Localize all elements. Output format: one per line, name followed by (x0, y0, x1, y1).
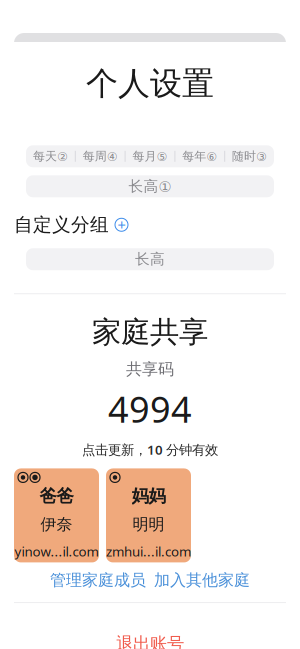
button[interactable]: 每天② (26, 145, 75, 167)
staticText: 家庭共享 (92, 314, 208, 350)
staticText: 加入其他家庭 (154, 570, 250, 590)
staticText: 随时③ (232, 149, 267, 164)
button[interactable]: 4994 (108, 385, 192, 433)
staticText: 共享码 (126, 359, 174, 379)
button[interactable]: 每年⑥ (175, 145, 224, 167)
staticText: 每天② (33, 149, 68, 164)
staticText: 妈妈 (131, 485, 165, 507)
staticText: 每周④ (83, 149, 118, 164)
button[interactable]: 管理家庭成员 (50, 570, 146, 590)
button[interactable]: 随时③ (225, 145, 274, 167)
button[interactable]: 每周④ (76, 145, 125, 167)
staticText: zmhui...il.com (106, 542, 191, 560)
staticText: 4994 (108, 385, 192, 433)
button[interactable]: 加入其他家庭 (154, 570, 250, 590)
staticText: 退出账号 (116, 633, 184, 649)
button[interactable]: 自定义分组 (14, 213, 286, 236)
staticText: 每年⑥ (182, 149, 217, 164)
button[interactable]: 长高 (26, 248, 274, 270)
button[interactable]: 爸爸 (14, 468, 99, 562)
staticText: 点击更新，10 分钟有效 (82, 441, 218, 458)
staticText: 爸爸 (39, 485, 73, 507)
staticText: 明明 (132, 515, 164, 534)
staticText: 长高 (135, 250, 165, 268)
button[interactable]: 长高① (26, 175, 274, 197)
staticText: 每月⑤ (132, 149, 167, 164)
staticText: 自定义分组 (14, 213, 109, 236)
staticText: 管理家庭成员 (50, 570, 146, 590)
staticText: 长高① (128, 177, 171, 195)
button[interactable]: 退出账号 (116, 633, 184, 649)
staticText: 伊奈 (40, 515, 72, 534)
button[interactable]: 每月⑤ (126, 145, 174, 167)
staticText: 个人设置 (86, 64, 214, 103)
staticText: + (117, 215, 125, 234)
staticText: yinow...il.com (14, 542, 98, 560)
button[interactable]: 妈妈 (106, 468, 191, 562)
